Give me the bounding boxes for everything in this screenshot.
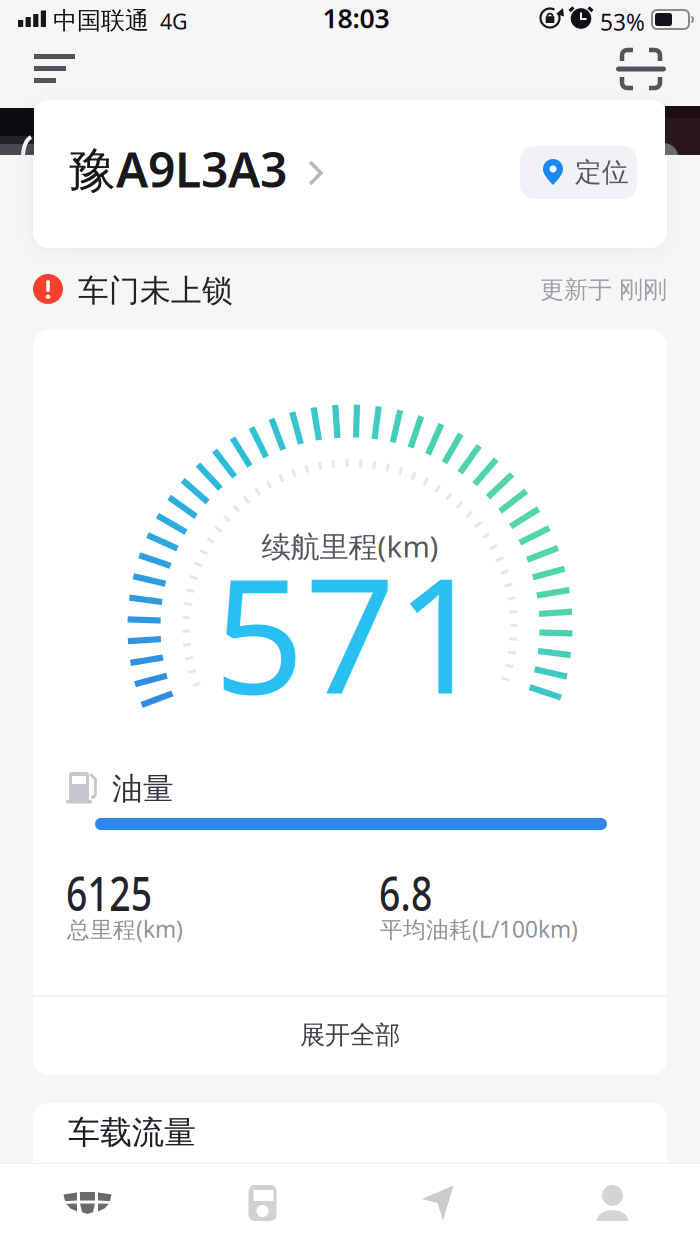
staticText: 平均油耗(L/100km) <box>380 914 578 944</box>
staticText: 571 <box>213 527 486 737</box>
staticText: 车门未上锁 <box>78 272 233 310</box>
button[interactable]: Explore <box>350 1168 525 1238</box>
staticText: 续航里程(km) <box>261 526 438 565</box>
staticText: 车载流量 <box>68 1113 196 1152</box>
button[interactable]: Menu <box>26 46 83 91</box>
staticText: 18:03 <box>322 0 389 36</box>
button[interactable]: Charging <box>175 1168 350 1238</box>
staticText: 油量 <box>112 770 174 808</box>
button[interactable]: Scan <box>620 44 670 94</box>
staticText: 4G <box>160 7 188 35</box>
button[interactable]: Profile <box>525 1168 700 1238</box>
button[interactable]: Car <box>0 1168 175 1238</box>
staticText: 豫A9L3A3 <box>68 137 287 201</box>
staticText: 更新于 刚刚 <box>540 275 667 304</box>
staticText: 中国联通 <box>53 6 149 35</box>
button[interactable]: 展开全部 <box>33 996 667 1074</box>
button[interactable]: 豫A9L3A3 <box>33 100 667 248</box>
staticText: 6125 <box>66 862 174 924</box>
staticText: 总里程(km) <box>67 914 183 944</box>
staticText: 53% <box>600 7 645 37</box>
staticText: 定位 <box>575 156 629 189</box>
staticText: 展开全部 <box>300 1019 400 1050</box>
button[interactable]: 定位 <box>520 146 637 199</box>
staticText: 6.8 <box>379 862 446 924</box>
